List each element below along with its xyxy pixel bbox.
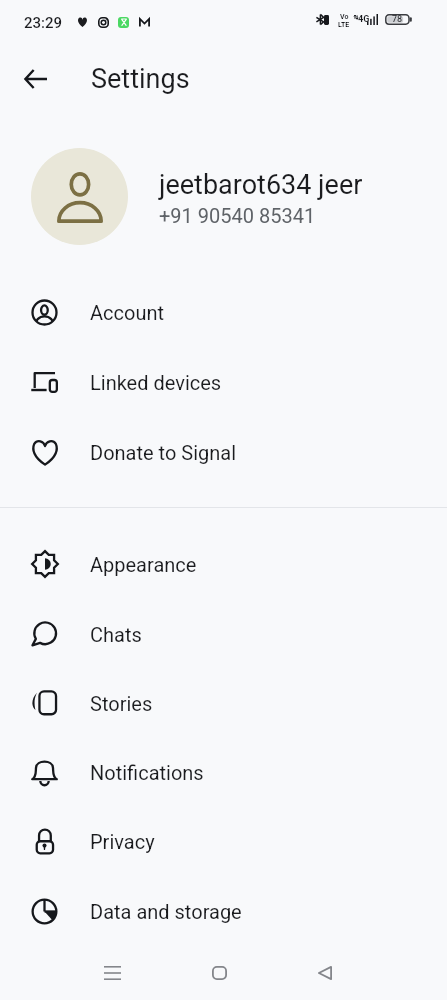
button[interactable]: Appearance	[0, 529, 447, 599]
staticText: 78	[392, 14, 403, 25]
button[interactable]: Recent apps	[88, 949, 136, 997]
staticText: 4G	[358, 14, 370, 25]
staticText: LTE	[338, 21, 350, 29]
button[interactable]: Privacy	[0, 806, 447, 876]
staticText: Privacy	[90, 830, 155, 853]
button[interactable]: jeetbarot634 jeer	[0, 143, 447, 249]
staticText: Stories	[90, 692, 153, 715]
staticText: jeetbarot634 jeer	[159, 169, 363, 201]
button[interactable]: Home	[195, 949, 243, 997]
button[interactable]: Notifications	[0, 737, 447, 807]
button[interactable]: Back	[301, 949, 349, 997]
button[interactable]: Stories	[0, 668, 447, 738]
staticText: Donate to Signal	[90, 441, 237, 464]
button[interactable]: Chats	[0, 599, 447, 669]
staticText: 23:29	[24, 14, 63, 32]
staticText: Settings	[91, 63, 190, 95]
button[interactable]: Navigate up	[11, 55, 59, 103]
staticText: Account	[90, 301, 165, 324]
staticText: Notifications	[90, 761, 204, 784]
staticText: Chats	[90, 623, 142, 646]
staticText: +91 90540 85341	[159, 204, 316, 227]
button[interactable]: Linked devices	[0, 347, 447, 417]
staticText: Linked devices	[90, 371, 222, 394]
staticText: Data and storage	[90, 900, 242, 923]
button[interactable]: Donate to Signal	[0, 417, 447, 487]
button[interactable]: Data and storage	[0, 876, 447, 946]
button[interactable]: Account	[0, 277, 447, 347]
staticText: Vo	[340, 13, 349, 21]
staticText: Appearance	[90, 553, 197, 576]
